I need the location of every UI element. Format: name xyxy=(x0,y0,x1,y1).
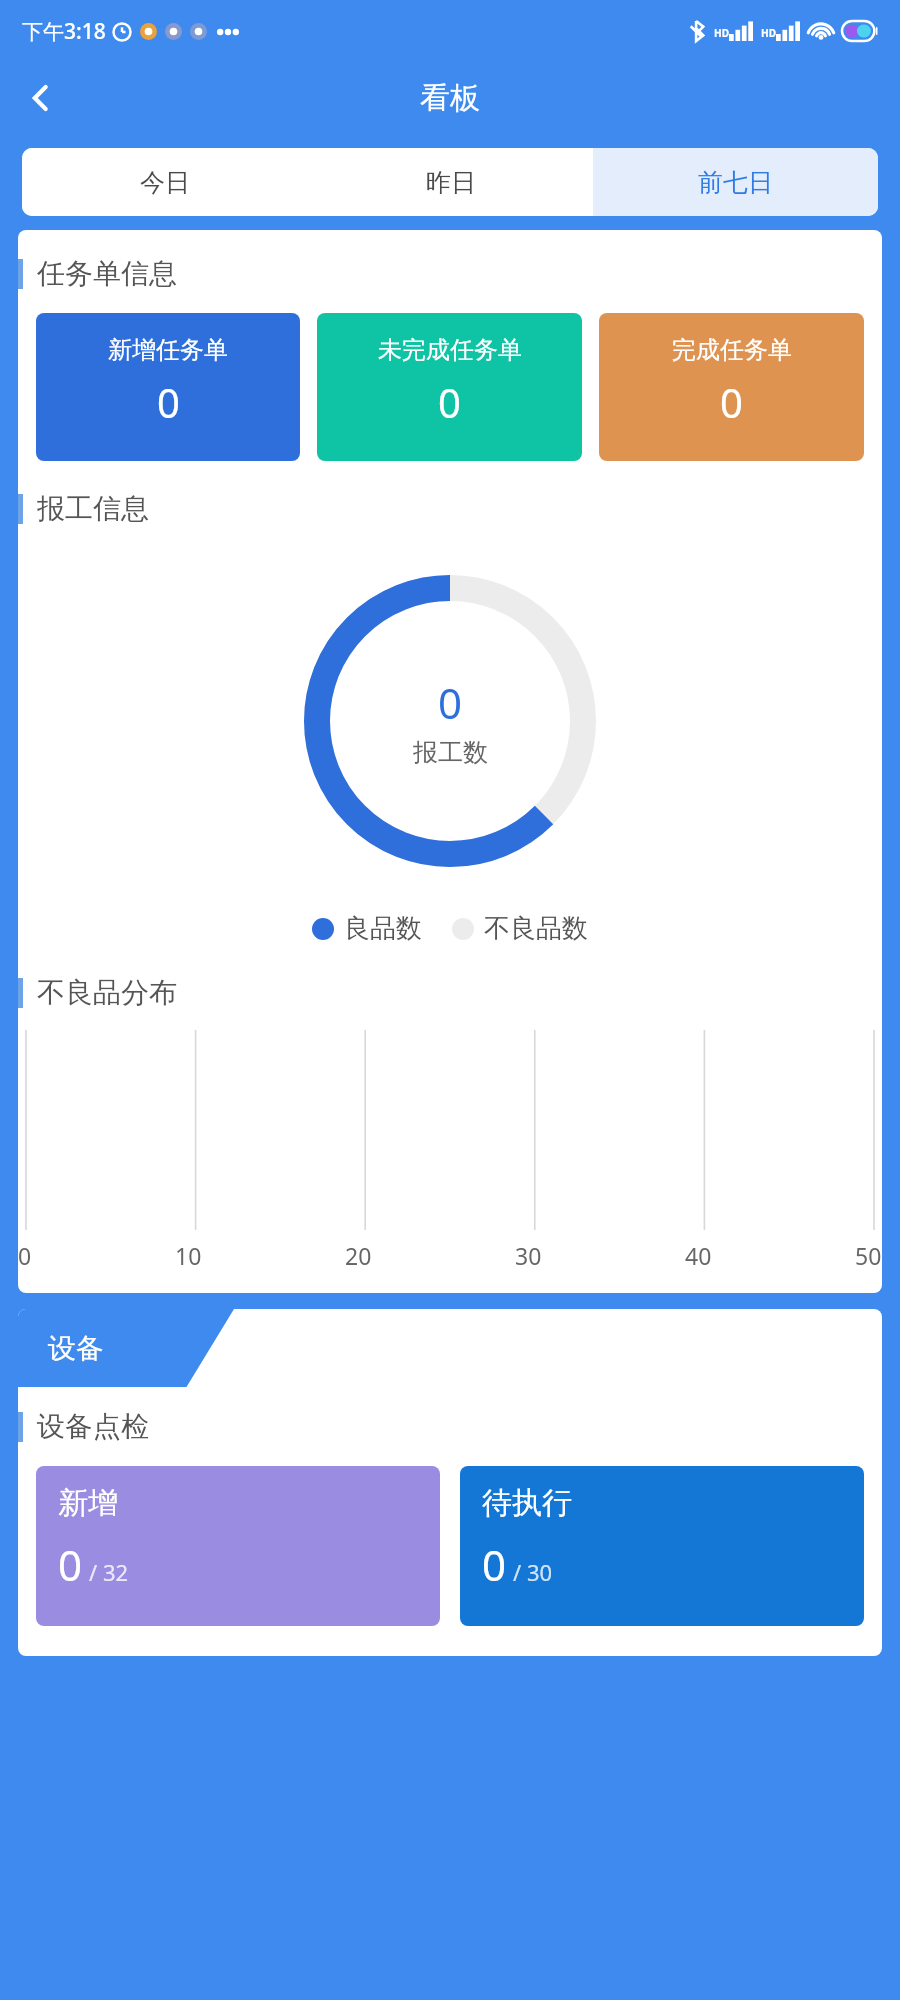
staticText: 前七日 xyxy=(698,167,773,198)
button[interactable]: 昨日 xyxy=(308,148,593,216)
staticText: 任务单信息 xyxy=(37,256,177,291)
button[interactable]: 完成任务单 xyxy=(599,313,864,461)
staticText: 0 xyxy=(482,1536,507,1593)
staticText: 50 xyxy=(855,1240,882,1271)
staticText: 20 xyxy=(345,1240,372,1271)
staticText: 0 xyxy=(157,375,180,429)
staticText: 设备 xyxy=(48,1331,104,1366)
button[interactable]: 今日 xyxy=(22,148,308,216)
button[interactable]: 前七日 xyxy=(593,148,878,216)
staticText: 报工数 xyxy=(413,737,488,768)
staticText: 看板 xyxy=(420,79,480,117)
button[interactable]: 待执行 xyxy=(460,1466,864,1626)
staticText: 10 xyxy=(175,1240,202,1271)
staticText: 0 xyxy=(58,1536,83,1593)
staticText: / 32 xyxy=(89,1557,129,1587)
staticText: HD xyxy=(761,26,776,40)
staticText: 不良品数 xyxy=(484,912,588,945)
staticText: 新增 xyxy=(58,1484,118,1522)
staticText: HD xyxy=(714,26,729,40)
staticText: 今日 xyxy=(140,167,190,198)
staticText: 0 xyxy=(438,674,463,731)
staticText: 待执行 xyxy=(482,1484,572,1522)
button[interactable]: 未完成任务单 xyxy=(317,313,582,461)
button[interactable]: Back xyxy=(14,71,68,125)
staticText: 30 xyxy=(515,1240,542,1271)
staticText: 昨日 xyxy=(426,167,476,198)
staticText: / 30 xyxy=(513,1557,553,1587)
staticText: 报工信息 xyxy=(37,491,149,526)
staticText: 未完成任务单 xyxy=(378,335,522,365)
button[interactable]: 新增任务单 xyxy=(36,313,300,461)
staticText: 设备点检 xyxy=(37,1409,149,1444)
staticText: 不良品分布 xyxy=(37,975,177,1010)
staticText: 40 xyxy=(685,1240,712,1271)
staticText: 0 xyxy=(18,1240,32,1271)
staticText: 完成任务单 xyxy=(672,335,792,365)
staticText: 新增任务单 xyxy=(108,335,228,365)
staticText: 下午3:18 xyxy=(22,17,106,46)
button[interactable]: 新增 xyxy=(36,1466,440,1626)
staticText: 0 xyxy=(438,375,461,429)
staticText: 0 xyxy=(720,375,743,429)
staticText: 良品数 xyxy=(344,912,422,945)
